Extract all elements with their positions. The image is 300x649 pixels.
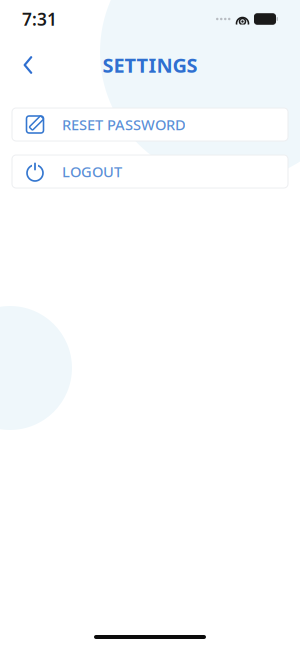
staticText: 7:31 xyxy=(22,7,57,30)
button[interactable]: LOGOUT xyxy=(12,155,288,188)
staticText: RESET PASSWORD xyxy=(62,115,186,134)
button[interactable]: RESET PASSWORD xyxy=(12,108,288,141)
staticText: LOGOUT xyxy=(62,162,122,181)
staticText: SETTINGS xyxy=(102,52,197,78)
button[interactable]: Back xyxy=(8,45,48,85)
